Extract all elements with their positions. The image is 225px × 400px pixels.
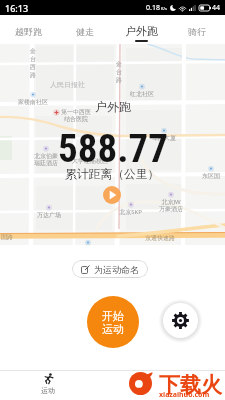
staticText: 健走 — [76, 26, 94, 37]
staticText: 44 — [212, 3, 221, 13]
staticText: 户外跑 — [125, 24, 158, 38]
staticText: 路 — [30, 71, 36, 79]
staticText: 16:13 — [5, 2, 29, 14]
button[interactable]: 户外跑 — [113, 15, 169, 44]
staticText: 国路 — [1, 233, 13, 241]
staticText: 红北社区 — [130, 90, 154, 98]
staticText: 金 — [116, 60, 122, 68]
staticText: 第一中西医 结合医院 — [61, 108, 91, 123]
staticText: 累计距离（公里） — [65, 167, 160, 182]
staticText: K/s — [161, 6, 167, 11]
staticText: 开始 运动 — [102, 309, 124, 336]
staticText: 北京JW 万豪酒店 — [159, 198, 183, 213]
staticText: 运动 — [41, 386, 55, 395]
staticText: 为运动命名 — [94, 264, 139, 275]
button[interactable]: Settings — [159, 299, 202, 342]
button[interactable]: 健走 — [57, 15, 113, 44]
staticText: 华商大厦 — [152, 134, 176, 142]
staticText: 越野跑 — [15, 26, 42, 37]
staticText: 大学红庙校区 — [72, 157, 108, 165]
button[interactable]: 为运动命名 — [72, 260, 148, 278]
staticText: 下载火 — [159, 372, 222, 398]
staticText: 台 — [116, 68, 122, 76]
staticText: 588.77 — [58, 126, 168, 172]
button[interactable]: 骑行 — [169, 15, 225, 44]
staticText: 骑行 — [188, 26, 206, 37]
staticText: 东区国 — [202, 172, 220, 180]
button[interactable]: 越野跑 — [0, 15, 57, 44]
staticText: 西 — [30, 63, 36, 71]
staticText: 户外跑 — [95, 99, 131, 114]
staticText: 路 — [116, 76, 122, 84]
staticText: 台 — [30, 55, 36, 63]
staticText: 万达广场 — [37, 211, 61, 219]
staticText: 人民日报社 — [50, 80, 85, 89]
button[interactable]: 运动 — [32, 373, 64, 395]
staticText: 北京SKP — [119, 208, 142, 216]
staticText: xiazaihuo.com — [159, 390, 210, 400]
staticText: 北京伯豪 瑞廷酒店 — [34, 152, 58, 167]
staticText: 0.18 — [146, 3, 160, 13]
staticText: 京通快速路 — [145, 234, 175, 242]
staticText: 金 — [30, 47, 36, 55]
button[interactable]: 开始 运动 — [87, 296, 139, 348]
staticText: 家楼南社区 — [18, 98, 48, 106]
